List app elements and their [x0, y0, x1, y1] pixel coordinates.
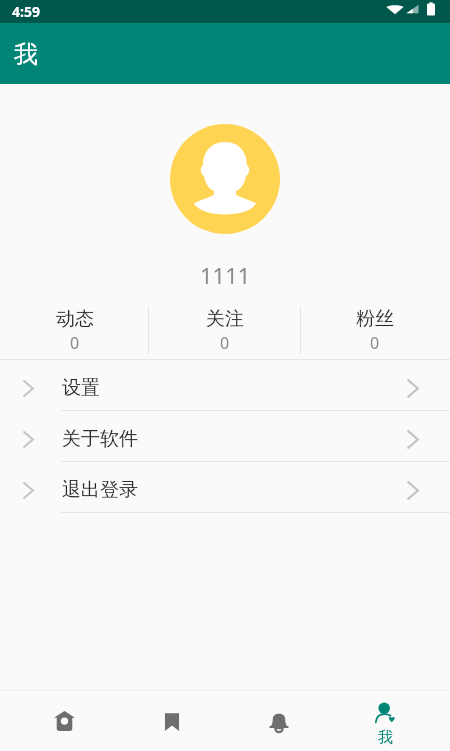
staticText: 0: [370, 332, 380, 354]
button[interactable]: 动态: [0, 301, 150, 359]
staticText: 我: [378, 728, 393, 747]
staticText: 动态: [56, 307, 94, 331]
staticText: 关于软件: [62, 427, 138, 451]
button[interactable]: Me: [332, 691, 439, 751]
staticText: 设置: [62, 376, 100, 400]
staticText: 我: [14, 39, 38, 69]
staticText: 粉丝: [356, 307, 394, 331]
button[interactable]: Profile photo: [170, 124, 280, 234]
button[interactable]: 粉丝: [300, 301, 450, 359]
button[interactable]: 设置: [0, 360, 450, 411]
button[interactable]: Home: [11, 691, 118, 751]
button[interactable]: 关于软件: [0, 411, 450, 462]
button[interactable]: 关注: [150, 301, 300, 359]
button[interactable]: 退出登录: [0, 462, 450, 513]
button[interactable]: Bookmarks: [118, 691, 225, 751]
staticText: 0: [220, 332, 230, 354]
staticText: 0: [70, 332, 80, 354]
staticText: 关注: [206, 307, 244, 331]
staticText: 4:59: [12, 2, 40, 21]
staticText: 1111: [200, 260, 251, 290]
staticText: 退出登录: [62, 478, 138, 502]
button[interactable]: Notifications: [225, 691, 332, 751]
